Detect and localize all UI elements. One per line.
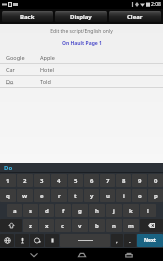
button[interactable]: Shift [0, 219, 22, 232]
staticText: 7 [106, 177, 110, 185]
staticText: l [147, 207, 149, 215]
button[interactable]: u [100, 189, 115, 202]
button[interactable]: m [123, 219, 139, 232]
staticText: z [29, 222, 32, 230]
button[interactable]: On Hault Page 1 [62, 40, 102, 47]
button[interactable]: q [0, 189, 16, 202]
button[interactable]: Settings [45, 234, 59, 247]
staticText: i [123, 192, 125, 200]
button[interactable]: t [68, 189, 83, 202]
button[interactable]: g [72, 204, 88, 217]
button[interactable]: n [106, 219, 122, 232]
staticText: Edit the script/English only [0, 28, 163, 35]
button[interactable]: 7 [100, 174, 115, 187]
staticText: q [6, 192, 10, 200]
button[interactable]: Google [0, 52, 163, 63]
button[interactable]: Space [60, 234, 110, 247]
button[interactable]: 9 [132, 174, 147, 187]
button[interactable]: Do [0, 76, 163, 87]
staticText: k [129, 207, 133, 215]
staticText: Do [4, 164, 13, 172]
button[interactable]: Home [69, 248, 95, 261]
button[interactable]: r [51, 189, 67, 202]
button[interactable]: b [89, 219, 105, 232]
staticText: e [40, 192, 44, 200]
button[interactable]: 5 [68, 174, 83, 187]
button[interactable]: Clear [109, 11, 161, 22]
button[interactable]: Change language [0, 234, 14, 247]
staticText: Back [20, 13, 35, 21]
staticText: Told [40, 78, 51, 85]
staticText: Car [6, 66, 40, 73]
staticText: m [128, 222, 134, 230]
staticText: 8 [122, 177, 126, 185]
button[interactable]: k [123, 204, 139, 217]
button[interactable]: 4 [51, 174, 67, 187]
button[interactable]: , [111, 234, 123, 247]
staticText: n [112, 222, 116, 230]
staticText: o [138, 192, 142, 200]
button[interactable]: 6 [84, 174, 99, 187]
button[interactable]: o [132, 189, 147, 202]
staticText: 6 [90, 177, 94, 185]
button[interactable]: Car [0, 64, 163, 75]
button[interactable]: s [23, 204, 38, 217]
button[interactable]: j [106, 204, 122, 217]
staticText: p [154, 192, 158, 200]
button[interactable]: Hide keyboard [21, 248, 47, 261]
staticText: Do [6, 78, 40, 85]
staticText: s [29, 207, 33, 215]
button[interactable]: d [39, 204, 54, 217]
button[interactable]: v [72, 219, 88, 232]
staticText: Clear [127, 13, 143, 21]
staticText: Hotel [40, 66, 54, 73]
button[interactable]: 8 [116, 174, 131, 187]
staticText: a [13, 207, 17, 215]
staticText: w [22, 192, 28, 200]
staticText: Google [6, 54, 40, 61]
staticText: 3 [40, 177, 44, 185]
button[interactable]: Display [55, 11, 107, 22]
button[interactable]: Voice input [15, 234, 29, 247]
staticText: x [45, 222, 49, 230]
button[interactable]: z [23, 219, 38, 232]
button[interactable]: x [39, 219, 54, 232]
staticText: 1 [6, 177, 10, 185]
button[interactable]: 3 [34, 174, 50, 187]
button[interactable]: 0 [148, 174, 163, 187]
button[interactable]: f [55, 204, 71, 217]
button[interactable]: i [116, 189, 131, 202]
button[interactable]: w [17, 189, 33, 202]
button[interactable]: e [34, 189, 50, 202]
staticText: v [78, 222, 82, 230]
button[interactable]: Back [2, 11, 53, 22]
button[interactable]: a [7, 204, 22, 217]
staticText: 2:08 [151, 1, 161, 8]
button[interactable]: p [148, 189, 163, 202]
button[interactable]: h [89, 204, 105, 217]
button[interactable]: Backspace [140, 219, 163, 232]
button[interactable]: Do [0, 163, 163, 172]
button[interactable]: Recent apps [116, 248, 142, 261]
staticText: b [95, 222, 99, 230]
button[interactable]: . [124, 234, 136, 247]
staticText: 0 [154, 177, 158, 185]
staticText: Apple [40, 54, 55, 61]
staticText: d [45, 207, 49, 215]
button[interactable]: Emoji [30, 234, 44, 247]
staticText: t [74, 192, 77, 200]
staticText: 9 [138, 177, 142, 185]
staticText: j [113, 207, 115, 215]
button[interactable]: 1 [0, 174, 16, 187]
button[interactable]: c [55, 219, 71, 232]
staticText: Next [144, 237, 157, 244]
button[interactable]: y [84, 189, 99, 202]
staticText: f [62, 207, 65, 215]
button[interactable]: 2 [17, 174, 33, 187]
button[interactable]: Next [137, 234, 163, 247]
staticText: 4 [57, 177, 61, 185]
staticText: g [78, 207, 82, 215]
button[interactable]: l [140, 204, 156, 217]
staticText: u [106, 192, 110, 200]
staticText: c [61, 222, 65, 230]
